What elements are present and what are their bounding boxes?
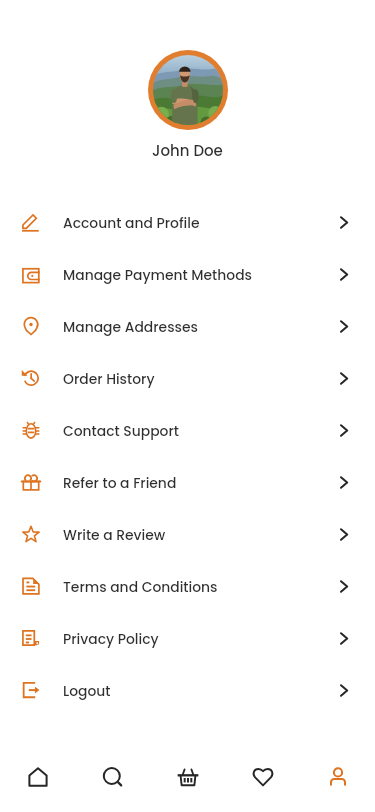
button[interactable]: Logout xyxy=(0,664,375,716)
button[interactable]: Profile photo xyxy=(148,50,228,130)
staticText: Manage Addresses xyxy=(63,317,198,336)
staticText: Contact Support xyxy=(63,421,179,440)
button[interactable]: Terms and Conditions xyxy=(0,560,375,612)
staticText: Order History xyxy=(63,369,155,388)
staticText: Privacy Policy xyxy=(63,629,159,648)
button[interactable]: Account and Profile xyxy=(0,196,375,248)
staticText: Refer to a Friend xyxy=(63,473,177,492)
staticText: Logout xyxy=(63,681,111,700)
staticText: Terms and Conditions xyxy=(63,577,218,596)
staticText: Write a Review xyxy=(63,525,166,544)
button[interactable]: Order History xyxy=(0,352,375,404)
button[interactable]: Contact Support xyxy=(0,404,375,456)
button[interactable]: Favorites xyxy=(225,750,300,803)
staticText: John Doe xyxy=(152,140,223,160)
staticText: Account and Profile xyxy=(63,213,200,232)
button[interactable]: Write a Review xyxy=(0,508,375,560)
button[interactable]: Manage Addresses xyxy=(0,300,375,352)
button[interactable]: Profile xyxy=(300,750,375,803)
button[interactable]: Refer to a Friend xyxy=(0,456,375,508)
button[interactable]: Cart xyxy=(150,750,225,803)
button[interactable]: Manage Payment Methods xyxy=(0,248,375,300)
button[interactable]: Home xyxy=(0,750,75,803)
button[interactable]: Privacy Policy xyxy=(0,612,375,664)
button[interactable]: Search xyxy=(75,750,150,803)
staticText: Manage Payment Methods xyxy=(63,265,252,284)
